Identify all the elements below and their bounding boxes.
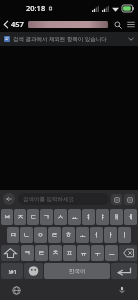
staticText: ㄹ — [51, 231, 58, 239]
button[interactable]: ㅡ — [105, 245, 118, 261]
button[interactable]: ㅔ — [124, 209, 137, 225]
button[interactable]: Emoji — [24, 263, 43, 279]
button[interactable]: ㅈ — [14, 209, 26, 225]
button[interactable]: ㄴ — [20, 227, 33, 243]
staticText: 457 — [11, 19, 24, 29]
button[interactable]: Voice input — [116, 284, 128, 296]
button[interactable]: Settings — [124, 194, 135, 205]
staticText: ㅊ — [52, 249, 59, 257]
button[interactable]: ㅂ — [1, 209, 13, 225]
staticText: ㅇ — [37, 231, 44, 239]
staticText: ㄱ — [43, 213, 50, 221]
staticText: ㅌ — [38, 249, 45, 257]
button[interactable]: ㅅ — [54, 209, 67, 225]
button[interactable]: Change language — [10, 284, 22, 296]
staticText: ㅏ — [107, 231, 114, 239]
staticText: ㅛ — [71, 213, 78, 221]
button[interactable]: ㅇ — [34, 227, 47, 243]
button[interactable]: ㄷ — [27, 209, 39, 225]
staticText: ㄷ — [30, 213, 37, 221]
staticText: 검색 결과에서 제외된 항목이 있습니다 — [13, 35, 125, 43]
button[interactable]: 검색어를 입력하세요 — [18, 193, 109, 205]
staticText: ㅑ — [99, 213, 106, 221]
staticText: ㅁ — [10, 231, 17, 239]
button[interactable]: ㅎ — [62, 227, 75, 243]
button[interactable]: Back — [0, 19, 26, 29]
button[interactable]: ㅑ — [96, 209, 109, 225]
staticText: ㅋ — [24, 249, 31, 257]
button[interactable] — [28, 21, 108, 28]
button[interactable]: ㅊ — [49, 245, 62, 261]
button[interactable]: Translate — [111, 194, 122, 205]
staticText: ㅐ — [113, 213, 120, 221]
staticText: ㅣ — [121, 231, 128, 239]
staticText: ㅡ — [108, 249, 115, 257]
button[interactable]: ㅕ — [82, 209, 95, 225]
button[interactable]: ㅜ — [91, 245, 104, 261]
button[interactable]: ㅌ — [35, 245, 48, 261]
button[interactable]: Enter — [111, 263, 137, 279]
button[interactable]: Previous — [3, 193, 15, 205]
staticText: ㅈ — [17, 213, 24, 221]
staticText: ㅕ — [85, 213, 92, 221]
button[interactable]: ㅓ — [90, 227, 103, 243]
staticText: ㅓ — [93, 231, 100, 239]
staticText: ㅜ — [94, 249, 101, 257]
button[interactable]: ㅐ — [110, 209, 123, 225]
staticText: ㅔ — [127, 213, 134, 221]
button[interactable]: Shift — [1, 245, 20, 261]
button[interactable]: ㅁ — [7, 227, 19, 243]
button[interactable]: ㄹ — [48, 227, 61, 243]
button[interactable]: ㅠ — [77, 245, 90, 261]
button[interactable]: ㅛ — [68, 209, 81, 225]
staticText: 한국어 — [69, 268, 86, 275]
staticText: 20:18 — [26, 3, 46, 13]
button[interactable]: !#1 — [1, 263, 23, 279]
button[interactable]: ㅗ — [76, 227, 89, 243]
button[interactable]: ㅋ — [21, 245, 34, 261]
staticText: ㄴ — [23, 231, 30, 239]
button[interactable]: 검색 결과에서 제외된 항목이 있습니다 — [0, 32, 138, 46]
button[interactable]: ㄱ — [40, 209, 53, 225]
staticText: ㅠ — [80, 249, 87, 257]
staticText: ㅂ — [4, 213, 11, 221]
staticText: 검색어를 입력하세요 — [23, 195, 74, 203]
staticText: ㅎ — [65, 231, 72, 239]
button[interactable]: Menu — [124, 18, 137, 31]
button[interactable]: Backspace — [119, 245, 137, 261]
staticText: ㅍ — [66, 249, 73, 257]
button[interactable]: ㅣ — [118, 227, 131, 243]
button[interactable]: ㅍ — [63, 245, 76, 261]
staticText: ㅗ — [79, 231, 86, 239]
button[interactable]: 한국어 — [44, 263, 110, 279]
staticText: !#1 — [8, 268, 17, 275]
button[interactable]: ㅏ — [104, 227, 117, 243]
staticText: ㅅ — [57, 213, 64, 221]
button[interactable]: Search — [111, 18, 124, 31]
